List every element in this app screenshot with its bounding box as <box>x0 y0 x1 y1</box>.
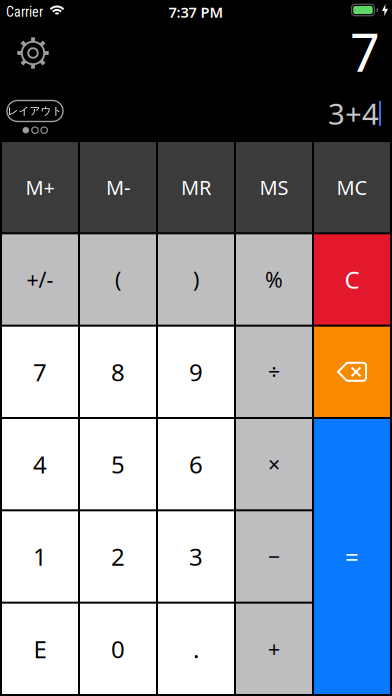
staticText: MS <box>259 174 288 200</box>
button[interactable]: × <box>236 419 312 509</box>
staticText: 7:37 PM <box>168 2 223 22</box>
button[interactable]: M- <box>80 142 156 232</box>
staticText: 3+4 <box>328 94 379 133</box>
staticText: M- <box>106 174 130 200</box>
staticText: 1 <box>33 540 47 572</box>
button[interactable]: ( <box>80 234 156 325</box>
button[interactable]: 7 <box>2 327 78 417</box>
button[interactable]: ) <box>158 234 234 325</box>
button[interactable]: Settings <box>17 37 49 69</box>
button[interactable]: MR <box>158 142 234 232</box>
button[interactable]: % <box>236 234 312 325</box>
button[interactable]: E <box>2 604 78 694</box>
staticText: 0 <box>111 633 125 665</box>
staticText: M+ <box>25 174 54 200</box>
button[interactable]: 1 <box>2 511 78 602</box>
button[interactable]: 6 <box>158 419 234 509</box>
button[interactable]: 0 <box>80 604 156 694</box>
staticText: Carrier <box>6 4 43 20</box>
staticText: 3 <box>189 540 203 572</box>
staticText: ( <box>115 265 121 294</box>
button[interactable]: 8 <box>80 327 156 417</box>
button[interactable]: 9 <box>158 327 234 417</box>
button[interactable]: 4 <box>2 419 78 509</box>
staticText: ÷ <box>268 358 280 386</box>
button[interactable]: レイアウト <box>6 100 64 122</box>
button[interactable]: ÷ <box>236 327 312 417</box>
button[interactable]: C <box>314 234 390 325</box>
staticText: 7 <box>350 17 380 86</box>
staticText: % <box>265 265 283 294</box>
staticText: − <box>268 542 280 571</box>
button[interactable]: Delete <box>314 327 390 417</box>
button[interactable]: 3 <box>158 511 234 602</box>
staticText: 8 <box>111 356 125 388</box>
staticText: C <box>344 264 359 295</box>
button[interactable]: 2 <box>80 511 156 602</box>
button[interactable]: . <box>158 604 234 694</box>
staticText: +/- <box>26 265 53 294</box>
staticText: MC <box>336 174 367 200</box>
button[interactable]: + <box>236 604 312 694</box>
staticText: 9 <box>189 356 203 388</box>
staticText: . <box>193 633 199 665</box>
staticText: 4 <box>33 448 47 480</box>
button[interactable]: = <box>314 419 390 694</box>
staticText: MR <box>181 174 211 200</box>
staticText: 7 <box>33 356 47 388</box>
button[interactable]: +/- <box>2 234 78 325</box>
staticText: × <box>268 450 280 478</box>
staticText: + <box>268 635 280 663</box>
staticText: 6 <box>189 448 203 480</box>
staticText: = <box>345 540 359 572</box>
staticText: ) <box>193 265 199 294</box>
button[interactable]: − <box>236 511 312 602</box>
button[interactable]: M+ <box>2 142 78 232</box>
staticText: 2 <box>111 540 125 572</box>
button[interactable]: MS <box>236 142 312 232</box>
button[interactable]: MC <box>314 142 390 232</box>
staticText: レイアウト <box>7 104 62 117</box>
staticText: E <box>33 633 46 665</box>
button[interactable]: 5 <box>80 419 156 509</box>
staticText: 5 <box>111 448 125 480</box>
